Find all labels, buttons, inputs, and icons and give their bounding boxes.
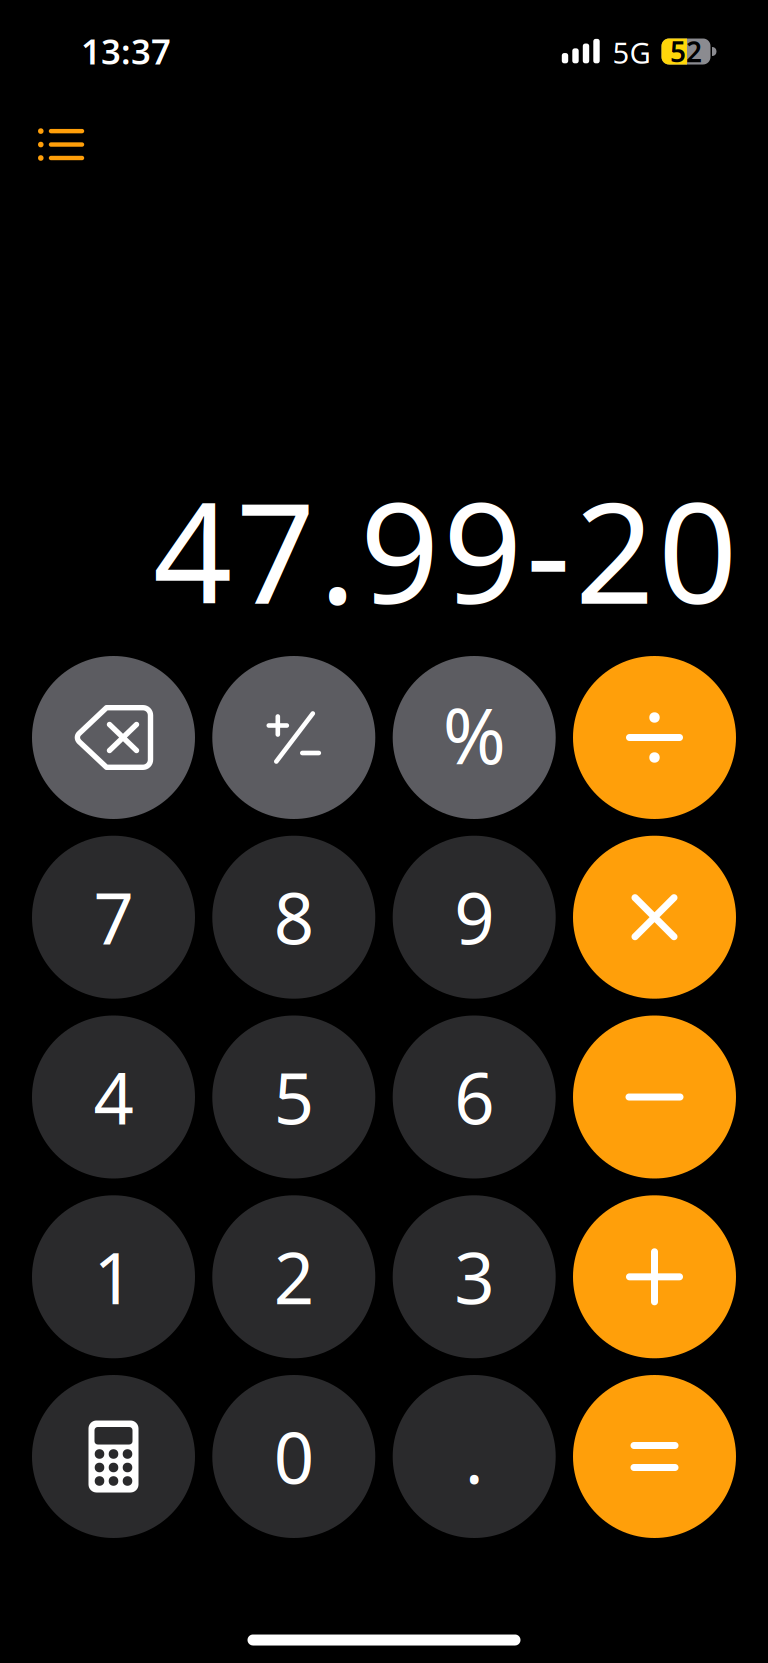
button[interactable]: Equals [573,1375,736,1538]
button[interactable]: Delete [32,656,195,819]
staticText: 4 [93,1050,133,1144]
staticText: 52 [670,33,702,70]
button[interactable]: Plus [573,1195,736,1358]
staticText: 3 [454,1230,494,1324]
staticText: 5 [274,1050,314,1144]
button[interactable]: . [393,1375,556,1538]
staticText: . [465,1410,484,1503]
staticText: 13:37 [81,28,171,74]
staticText: % [443,684,506,785]
button[interactable]: 1 [32,1195,195,1358]
button[interactable]: 0 [212,1375,375,1538]
staticText: 8 [274,870,314,964]
staticText: 2 [274,1230,314,1324]
button[interactable]: Multiply [573,836,736,999]
button[interactable]: 3 [393,1195,556,1358]
button[interactable]: Minus [573,1015,736,1178]
button[interactable]: Calculator [32,1375,195,1538]
button[interactable]: 2 [212,1195,375,1358]
button[interactable]: Divide [573,656,736,819]
staticText: 9 [454,870,494,964]
staticText: 1 [93,1230,133,1324]
staticText: 6 [454,1050,494,1144]
staticText: 5G [612,33,650,72]
button[interactable]: History [17,105,103,183]
button[interactable]: 9 [393,836,556,999]
staticText: 0 [274,1410,314,1503]
button[interactable]: % [393,656,556,819]
staticText: 7 [93,870,133,964]
button[interactable]: Plus minus [212,656,375,819]
button[interactable]: 8 [212,836,375,999]
button[interactable]: 7 [32,836,195,999]
button[interactable]: 5 [212,1015,375,1178]
button[interactable]: 4 [32,1015,195,1178]
button[interactable]: 6 [393,1015,556,1178]
staticText: 47.99-20 [153,458,737,642]
